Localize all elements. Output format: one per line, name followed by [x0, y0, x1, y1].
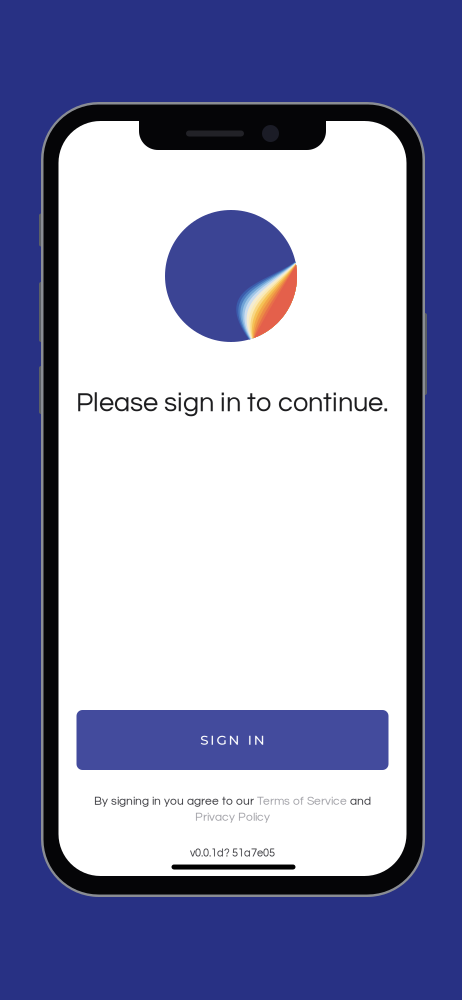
staticText: Please sign in to continue.	[76, 389, 389, 417]
staticText: Terms of Service	[257, 795, 347, 807]
button[interactable]: SIGN IN	[76, 710, 388, 770]
staticText: SIGN IN	[200, 732, 265, 748]
staticText: and	[347, 795, 371, 807]
staticText: Privacy Policy	[195, 811, 270, 823]
staticText: By signing in you agree to our	[94, 795, 257, 807]
staticText: v0.0.1d? 51a7e05	[190, 847, 275, 859]
